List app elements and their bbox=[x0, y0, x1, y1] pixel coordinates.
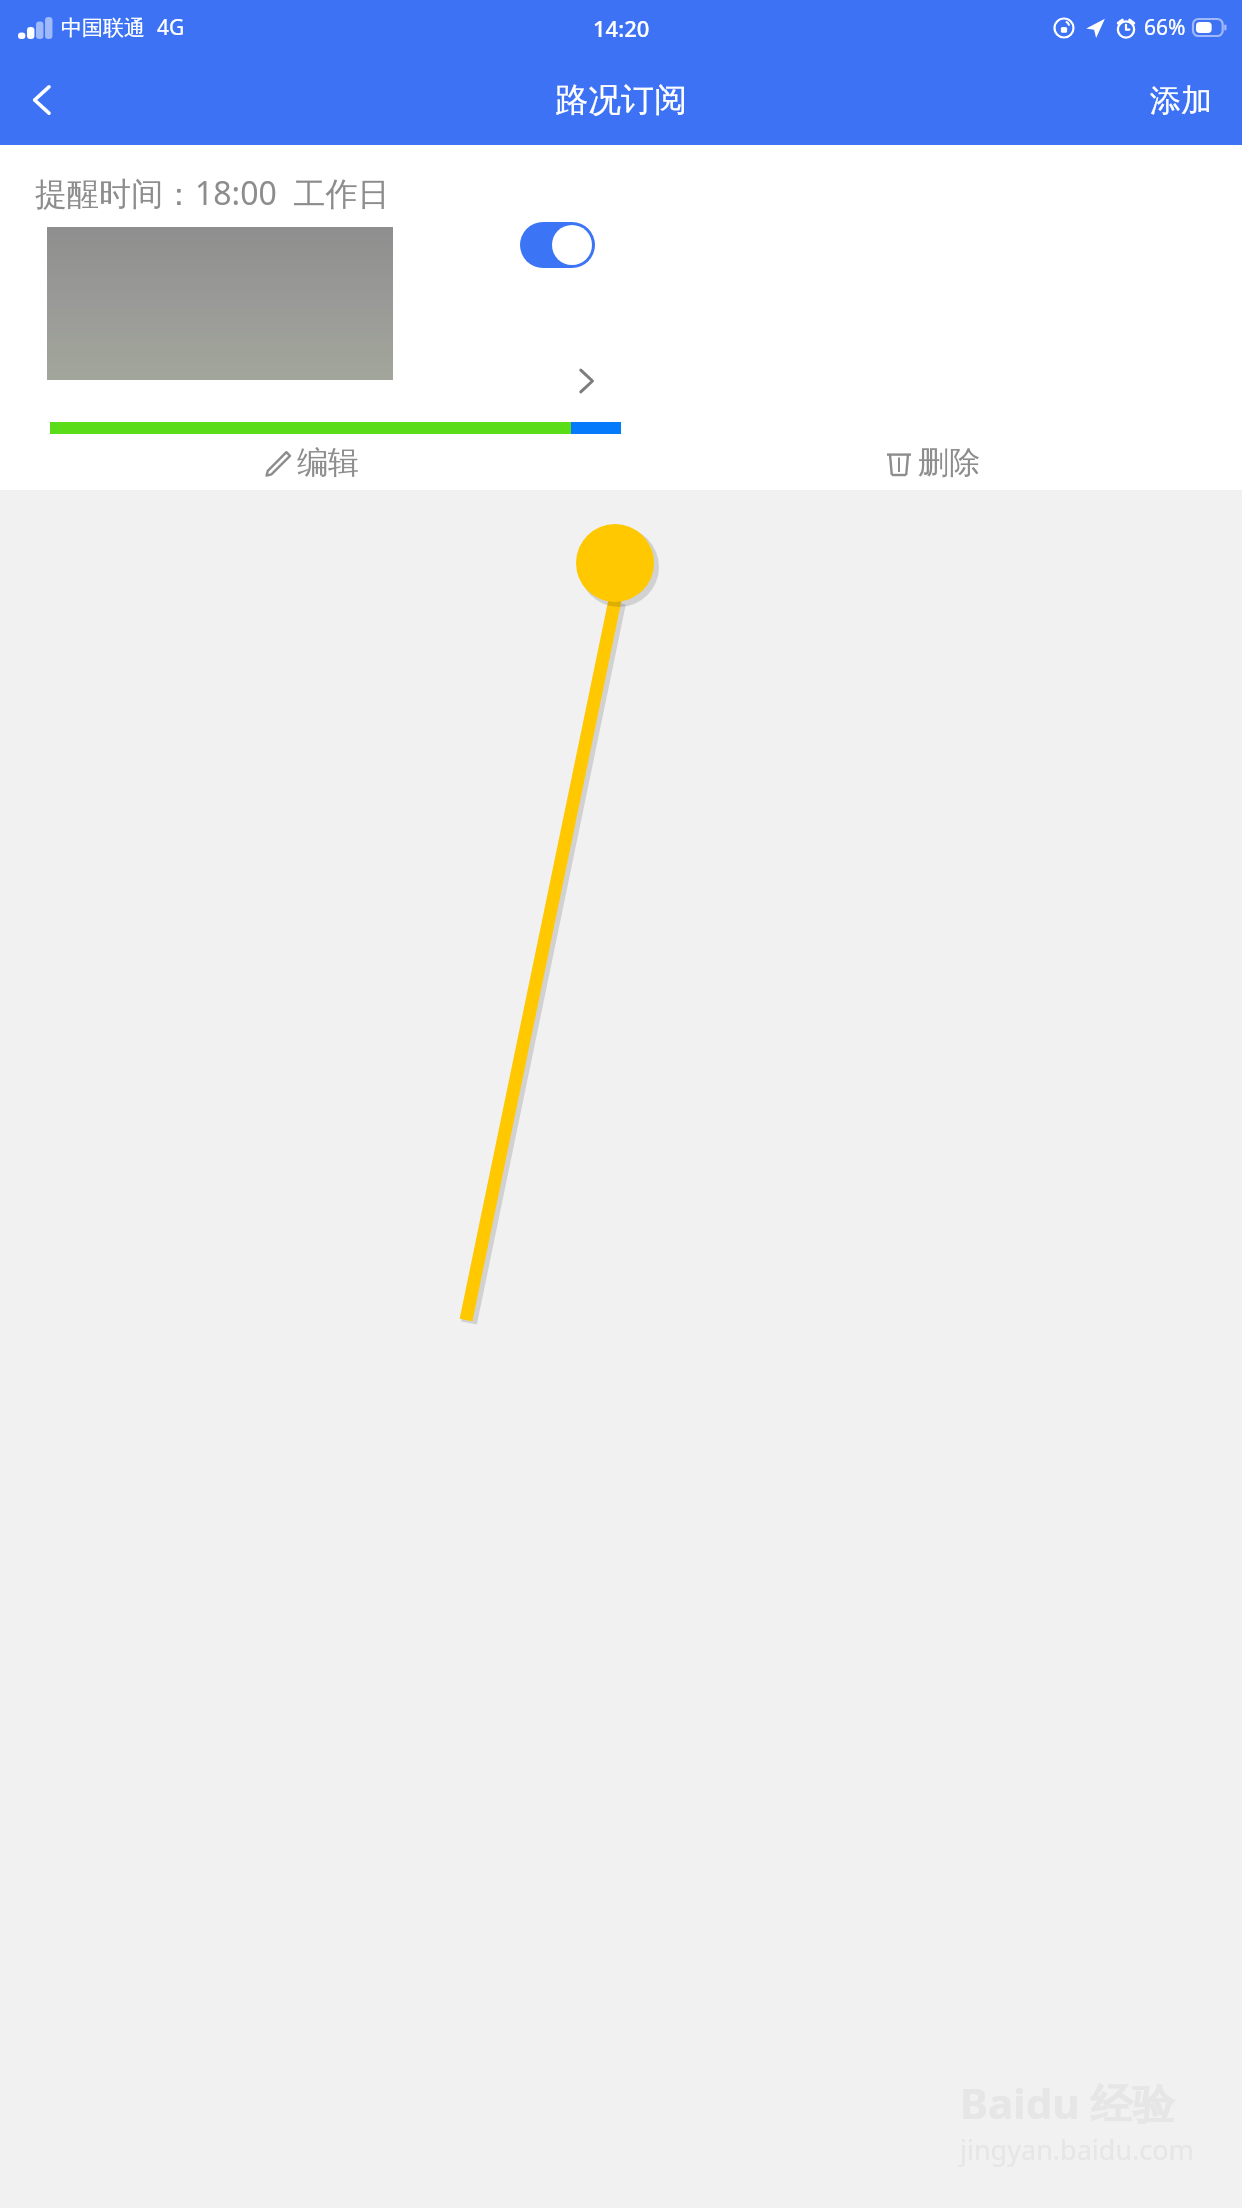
staticText: 14:20 bbox=[593, 13, 650, 43]
button[interactable]: 添加 bbox=[1120, 55, 1242, 145]
staticText: 66% bbox=[1144, 13, 1186, 42]
staticText: 提醒时间：18:00 工作日 bbox=[35, 171, 390, 215]
button[interactable]: 详情 bbox=[556, 351, 616, 411]
staticText: 编辑 bbox=[297, 443, 359, 482]
staticText: jingyan.baidu.com bbox=[960, 2131, 1194, 2168]
button[interactable]: 返回 bbox=[0, 57, 86, 143]
button[interactable]: 开关 bbox=[520, 222, 595, 268]
staticText: 4G bbox=[157, 13, 185, 42]
button[interactable] bbox=[47, 227, 393, 380]
button[interactable]: 编辑 bbox=[0, 435, 621, 490]
staticText: 删除 bbox=[918, 443, 980, 482]
staticText: 添加 bbox=[1150, 81, 1212, 120]
staticText: Baidu 经验 bbox=[960, 2074, 1175, 2131]
staticText: 中国联通 bbox=[61, 15, 145, 41]
staticText: 路况订阅 bbox=[555, 79, 687, 121]
button[interactable]: 删除 bbox=[621, 435, 1242, 490]
